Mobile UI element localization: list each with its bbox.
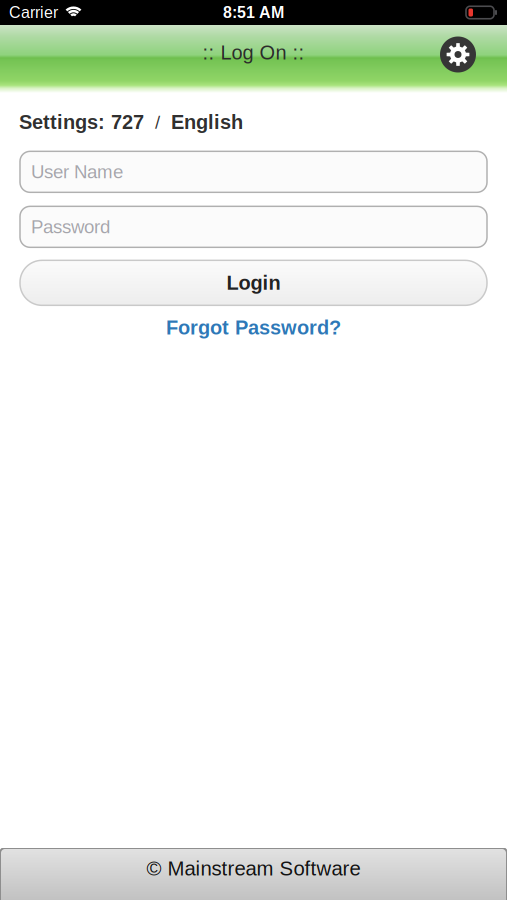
staticText: Login bbox=[226, 272, 280, 294]
button[interactable]: Settings bbox=[440, 36, 476, 81]
staticText: :: Log On :: bbox=[202, 41, 304, 64]
staticText: 8:51 AM bbox=[223, 4, 284, 21]
button[interactable]: Forgot Password? bbox=[166, 316, 341, 339]
button[interactable]: Password text field bbox=[20, 206, 487, 247]
staticText: English bbox=[171, 111, 243, 133]
staticText: / bbox=[155, 112, 160, 133]
staticText: Forgot Password? bbox=[166, 316, 341, 339]
staticText: Settings: 727 bbox=[19, 111, 144, 133]
staticText: Carrier bbox=[9, 4, 58, 21]
button[interactable]: User Name text field bbox=[20, 151, 487, 192]
button[interactable]: Login bbox=[20, 260, 487, 305]
staticText: © Mainstream Software bbox=[146, 857, 360, 880]
staticText: Password bbox=[31, 216, 110, 237]
staticText: User Name bbox=[31, 161, 123, 182]
